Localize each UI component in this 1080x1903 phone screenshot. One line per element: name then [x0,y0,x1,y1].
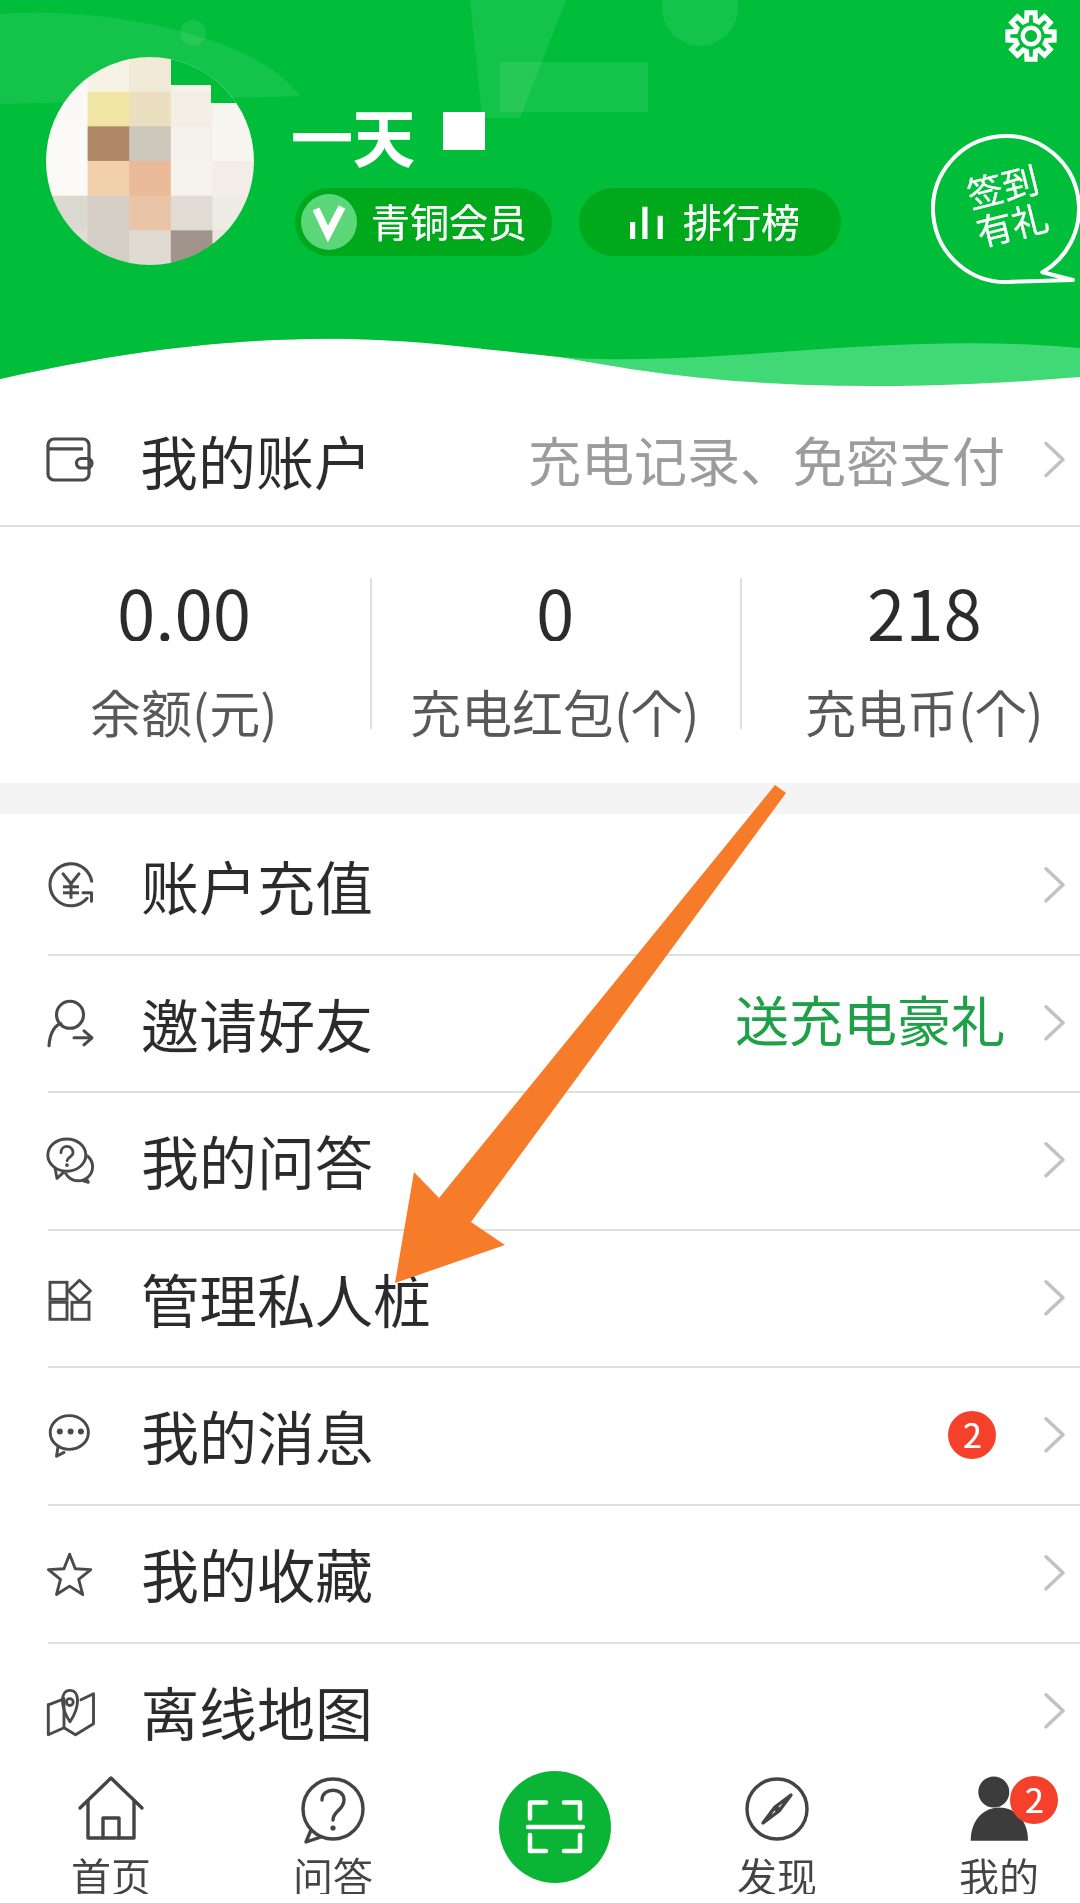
button[interactable]: 排行榜 [579,188,841,256]
button[interactable]: 离线地图 [0,1642,1080,1780]
button[interactable]: 管理私人桩 [0,1229,1080,1367]
staticText: 问答 [293,1846,373,1894]
button[interactable]: Check in for gifts [925,128,1080,298]
staticText: 签到 有礼 [961,150,1054,257]
staticText: 充电红包(个) [410,674,700,744]
staticText: 2 [1025,1776,1044,1822]
staticText: 我的账户 [140,418,373,502]
staticText: 充电币(个) [805,674,1044,744]
staticText: 2 [963,1411,982,1457]
button[interactable]: 218 [744,527,1080,783]
staticText: 邀请好友 [141,981,374,1065]
button[interactable]: 发现 [669,1779,885,1903]
staticText: 管理私人桩 [141,1256,432,1340]
button[interactable]: 我的账户 [0,392,1080,527]
button[interactable]: 问答 [225,1779,441,1903]
staticText: 青铜会员 [371,192,528,248]
button[interactable]: 0.00 [4,527,364,783]
staticText: 我的收藏 [141,1531,374,1615]
staticText: 充电记录、免密支付 [528,421,1005,498]
staticText: 账户充值 [141,843,374,927]
staticText: 一天 [291,90,416,180]
button[interactable]: 账户充值 [0,816,1080,954]
button[interactable]: 我的收藏 [0,1504,1080,1642]
button[interactable]: 邀请好友 [0,954,1080,1092]
staticText: 0 [536,561,575,641]
staticText: 218 [867,561,982,641]
button[interactable]: 我的 [891,1779,1080,1903]
button[interactable]: 青铜会员 [295,188,552,256]
staticText: 排行榜 [683,192,801,248]
button[interactable]: 首页 [3,1779,219,1903]
staticText: 首页 [71,1846,151,1894]
button[interactable]: 我的消息 [0,1366,1080,1504]
staticText: 送充电豪礼 [735,979,1005,1057]
staticText: 0.00 [117,561,252,641]
staticText: 余额(元) [90,674,278,744]
staticText: 我的 [959,1846,1039,1894]
staticText: 发现 [737,1846,817,1894]
button[interactable]: 0 [375,527,735,783]
button[interactable]: Settings [991,0,1071,80]
button[interactable]: 我的问答 [0,1091,1080,1229]
button[interactable]: Profile photo [46,57,254,265]
staticText: 我的消息 [141,1393,374,1477]
staticText: 我的问答 [141,1118,374,1202]
staticText: 离线地图 [141,1669,374,1753]
button[interactable]: Scan QR code [499,1771,611,1883]
